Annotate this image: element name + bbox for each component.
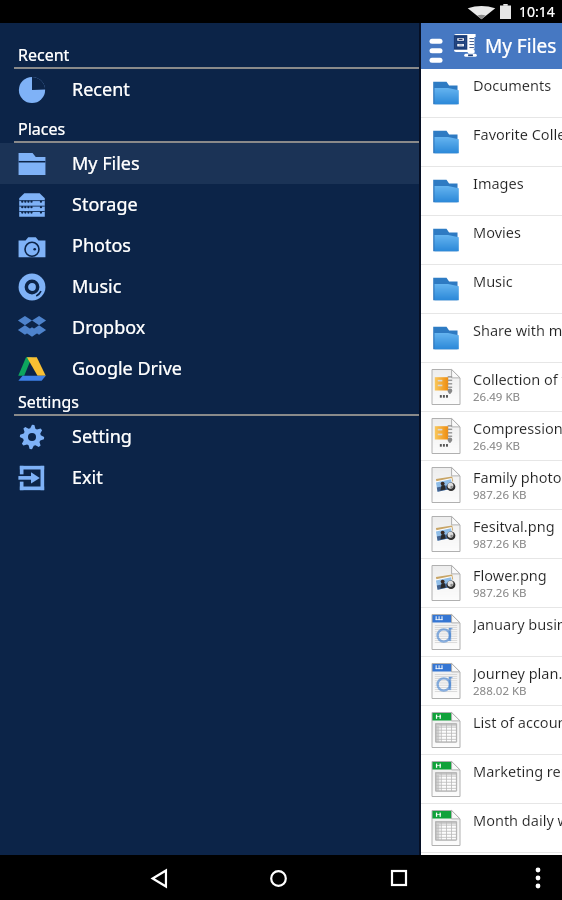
staticText: Settings bbox=[18, 391, 79, 413]
staticText: Documents bbox=[473, 75, 552, 95]
staticText: Family photo.png bbox=[473, 467, 562, 487]
button[interactable]: Movies bbox=[421, 216, 562, 264]
button[interactable]: Google Drive bbox=[0, 348, 421, 389]
staticText: Photos bbox=[72, 233, 131, 258]
staticText: 10:14 bbox=[519, 2, 555, 21]
staticText: Music bbox=[72, 274, 122, 299]
staticText: Recent bbox=[72, 77, 130, 102]
staticText: 987.26 KB bbox=[473, 487, 527, 503]
staticText: Favorite Collections bbox=[473, 124, 562, 144]
button[interactable]: Home bbox=[256, 856, 300, 900]
staticText: My Files bbox=[72, 151, 140, 176]
button[interactable]: Images bbox=[421, 167, 562, 215]
button[interactable]: More options bbox=[516, 856, 560, 900]
button[interactable]: Favorite Collections bbox=[421, 118, 562, 166]
button[interactable]: Documents bbox=[421, 69, 562, 117]
button[interactable]: Open navigation menu bbox=[422, 32, 450, 60]
staticText: Month daily work.xls bbox=[473, 810, 562, 830]
staticText: 26.49 KB bbox=[473, 389, 520, 405]
button[interactable]: Music bbox=[0, 266, 421, 307]
button[interactable]: Collection of files.zip bbox=[421, 363, 562, 411]
staticText: 987.26 KB bbox=[473, 536, 527, 552]
staticText: Compression.zip bbox=[473, 418, 562, 438]
staticText: Images bbox=[473, 173, 524, 193]
staticText: Places bbox=[18, 118, 66, 140]
staticText: Collection of files.zip bbox=[473, 369, 562, 389]
staticText: Setting bbox=[72, 424, 132, 449]
staticText: 26.49 KB bbox=[473, 438, 520, 454]
staticText: Music bbox=[473, 271, 513, 291]
staticText: Exit bbox=[72, 465, 103, 490]
staticText: Flower.png bbox=[473, 565, 547, 585]
staticText: 288.02 KB bbox=[473, 683, 527, 699]
button[interactable]: Journey plan.doc bbox=[421, 657, 562, 705]
button[interactable]: Fesitval.png bbox=[421, 510, 562, 558]
staticText: List of accounts.xls bbox=[473, 712, 562, 732]
button[interactable]: January business.doc bbox=[421, 608, 562, 656]
button[interactable]: Share with me bbox=[421, 314, 562, 362]
button[interactable]: Storage bbox=[0, 184, 421, 225]
staticText: Storage bbox=[72, 192, 138, 217]
staticText: 987.26 KB bbox=[473, 585, 527, 601]
button[interactable]: My Files bbox=[0, 143, 421, 184]
button[interactable]: Back bbox=[137, 856, 181, 900]
button[interactable]: Family photo.png bbox=[421, 461, 562, 509]
button[interactable]: Setting bbox=[0, 416, 421, 457]
button[interactable]: Marketing report.xls bbox=[421, 755, 562, 803]
button[interactable]: Dropbox bbox=[0, 307, 421, 348]
staticText: Dropbox bbox=[72, 315, 146, 340]
staticText: Google Drive bbox=[72, 356, 182, 381]
button[interactable]: List of accounts.xls bbox=[421, 706, 562, 754]
button[interactable]: Month daily work.xls bbox=[421, 804, 562, 852]
staticText: Marketing report.xls bbox=[473, 761, 562, 781]
button[interactable]: Recent bbox=[0, 69, 421, 110]
button[interactable]: Recent apps bbox=[377, 856, 421, 900]
staticText: My Files bbox=[485, 33, 557, 59]
staticText: Movies bbox=[473, 222, 521, 242]
staticText: Share with me bbox=[473, 320, 562, 340]
staticText: January business.doc bbox=[473, 614, 562, 634]
button[interactable]: Music bbox=[421, 265, 562, 313]
button[interactable]: Compression.zip bbox=[421, 412, 562, 460]
button[interactable]: Flower.png bbox=[421, 559, 562, 607]
staticText: Recent bbox=[18, 44, 70, 66]
button[interactable]: Exit bbox=[0, 457, 421, 498]
button[interactable]: Photos bbox=[0, 225, 421, 266]
staticText: Fesitval.png bbox=[473, 516, 555, 536]
staticText: Journey plan.doc bbox=[473, 663, 562, 683]
